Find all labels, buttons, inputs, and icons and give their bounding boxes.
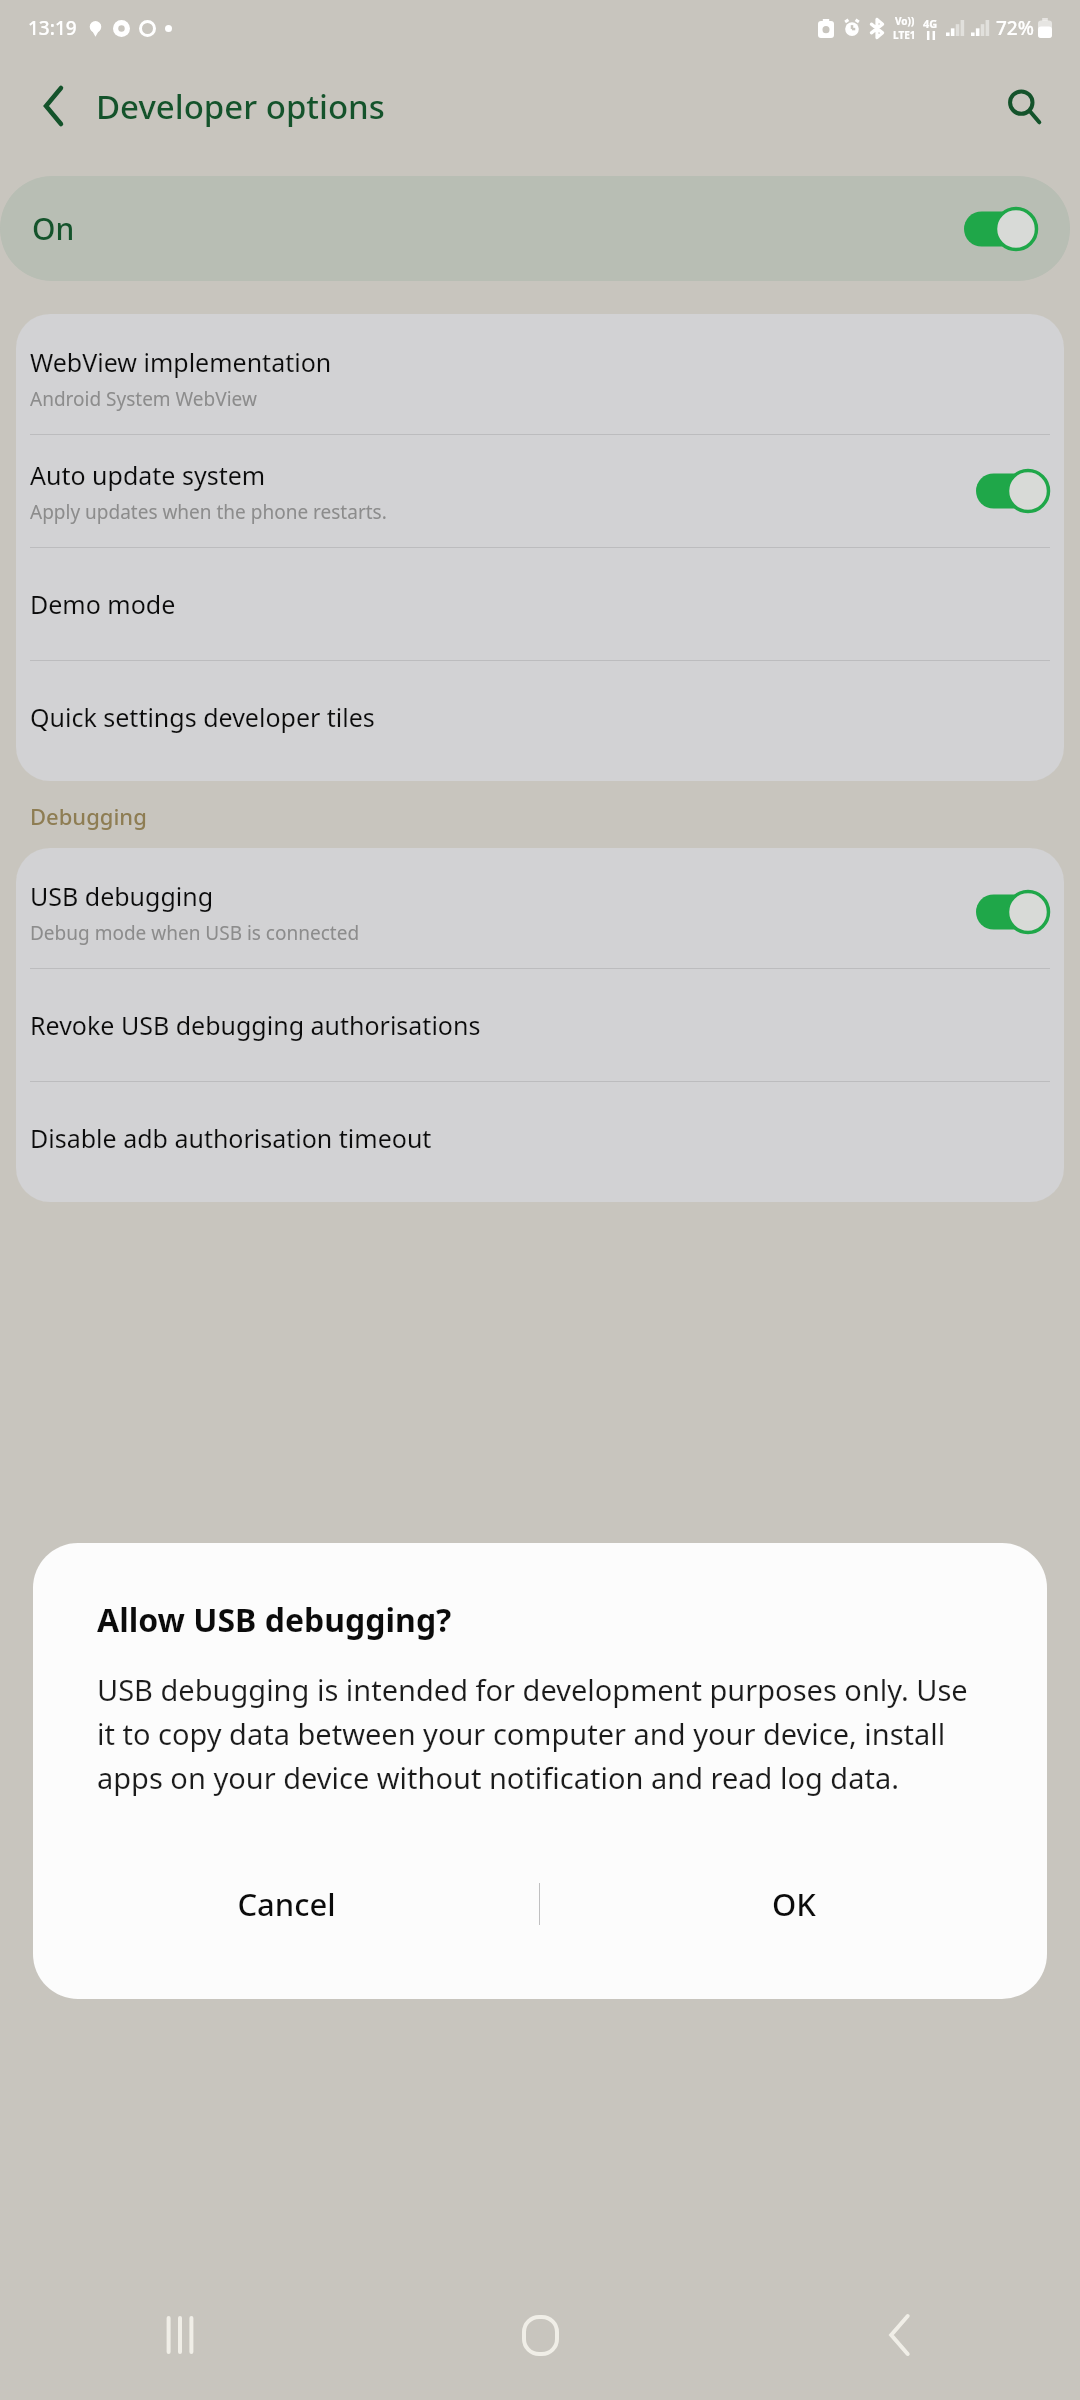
staticText: 4G — [923, 16, 938, 31]
button[interactable]: Revoke USB debugging authorisations — [16, 969, 1064, 1081]
button[interactable]: Auto update system — [16, 435, 1064, 547]
button[interactable]: OK — [540, 1849, 1047, 1959]
button[interactable]: Disable adb authorisation timeout — [16, 1082, 1064, 1194]
staticText: Auto update system — [30, 458, 266, 492]
button[interactable]: On — [0, 176, 1070, 281]
staticText: On — [32, 208, 75, 249]
staticText: Cancel — [237, 1883, 336, 1925]
button[interactable]: Home — [360, 2270, 720, 2400]
staticText: Apply updates when the phone restarts. — [30, 499, 387, 525]
staticText: 13:19 — [28, 15, 77, 41]
button[interactable]: USB debugging — [16, 856, 1064, 968]
staticText: USB debugging — [30, 879, 214, 913]
staticText: USB debugging is intended for developmen… — [97, 1670, 983, 1797]
staticText: OK — [772, 1883, 816, 1925]
staticText: LTE1 — [893, 28, 916, 42]
staticText: Disable adb authorisation timeout — [30, 1121, 432, 1155]
staticText: Debugging — [30, 801, 147, 831]
staticText: Developer options — [96, 84, 385, 129]
staticText: Revoke USB debugging authorisations — [30, 1008, 481, 1042]
staticText: Android System WebView — [30, 386, 257, 412]
button[interactable]: Quick settings developer tiles — [16, 661, 1064, 773]
staticText: WebView implementation — [30, 345, 332, 379]
button[interactable]: WebView implementation — [16, 322, 1064, 434]
button[interactable]: Search — [994, 76, 1054, 136]
staticText: Debug mode when USB is connected — [30, 920, 360, 946]
button[interactable]: Demo mode — [16, 548, 1064, 660]
button[interactable]: Cancel — [33, 1849, 539, 1959]
button[interactable]: Recents — [0, 2270, 360, 2400]
staticText: Vo)) — [895, 14, 915, 28]
staticText: Quick settings developer tiles — [30, 700, 375, 734]
staticText: Allow USB debugging? — [97, 1598, 452, 1642]
staticText: Demo mode — [30, 587, 176, 621]
staticText: 72% — [996, 15, 1034, 41]
button[interactable]: Back — [26, 78, 82, 134]
